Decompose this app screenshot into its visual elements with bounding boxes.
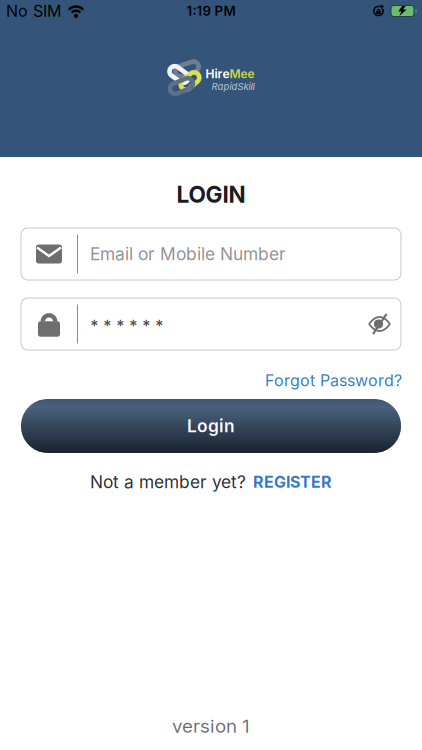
staticText: REGISTER bbox=[253, 473, 332, 491]
staticText: LOGIN bbox=[176, 181, 245, 208]
staticText: version 1 bbox=[172, 715, 250, 737]
staticText: Mee bbox=[229, 67, 254, 81]
staticText: No SIM bbox=[6, 2, 61, 20]
staticText: Hire bbox=[205, 67, 229, 81]
button[interactable]: Forgot Password? bbox=[265, 371, 402, 390]
staticText: Forgot Password? bbox=[265, 371, 402, 390]
staticText: 1:19 PM bbox=[186, 3, 235, 19]
staticText: RapidSkill bbox=[211, 81, 254, 92]
staticText: Email or Mobile Number bbox=[90, 244, 286, 264]
staticText: * * * * * * bbox=[90, 317, 164, 335]
button[interactable]: Show password bbox=[368, 312, 401, 335]
button[interactable]: REGISTER bbox=[253, 473, 332, 491]
button[interactable]: Login bbox=[21, 399, 401, 453]
staticText: Not a member yet? bbox=[90, 472, 246, 492]
staticText: Login bbox=[187, 416, 235, 436]
